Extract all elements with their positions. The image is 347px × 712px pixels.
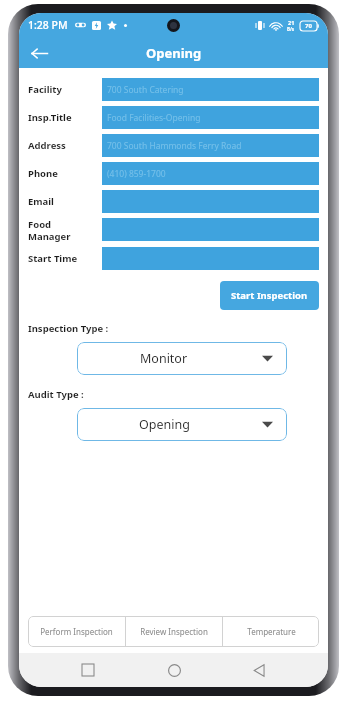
button[interactable]: Opening [77,408,287,441]
button[interactable]: Home [157,653,191,687]
staticText: 700 South Hammonds Ferry Road [107,140,242,152]
staticText: Temperature [247,626,296,637]
staticText: Food Manager [28,218,71,242]
button[interactable]: Perform Inspection [28,616,125,647]
staticText: Monitor [140,350,188,367]
staticText: Start Time [28,252,78,265]
staticText: Email [28,195,54,208]
staticText: 21 [288,19,295,26]
staticText: Opening [139,416,190,433]
button[interactable]: Monitor [77,342,287,375]
button[interactable]: Recent apps [71,653,105,687]
staticText: Start Inspection [231,289,308,302]
button[interactable]: 700 South Catering [102,78,319,101]
button[interactable]: Back [242,653,276,687]
staticText: Perform Inspection [40,626,113,637]
staticText: Address [28,139,66,152]
button[interactable]: Start Inspection [220,281,319,310]
staticText: Inspection Type : [28,322,109,335]
staticText: Review Inspection [140,626,208,637]
staticText: Opening [146,44,202,62]
button[interactable]: Back [25,39,53,67]
staticText: Food Facilities-Opening [107,112,201,124]
staticText: Audit Type : [28,388,84,401]
staticText: Facility [28,83,62,96]
staticText: 1:28 PM [28,18,68,32]
button[interactable]: Food Facilities-Opening [102,106,319,129]
staticText: Phone [28,167,58,180]
staticText: B/s [287,26,295,32]
staticText: (410) 859-1700 [107,168,166,180]
staticText: 70 [305,22,312,30]
staticText: Insp.Title [28,111,72,124]
button[interactable]: Temperature [223,616,319,647]
button[interactable]: (410) 859-1700 [102,162,319,185]
staticText: 700 South Catering [107,84,184,96]
button[interactable]: Review Inspection [126,616,222,647]
button[interactable]: 700 South Hammonds Ferry Road [102,134,319,157]
